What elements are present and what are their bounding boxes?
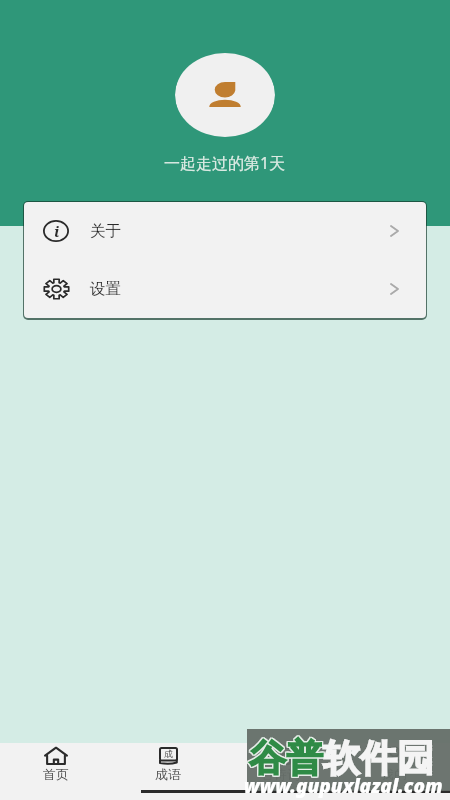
button[interactable]: 成 bbox=[112, 743, 224, 800]
staticText: 谷普 bbox=[249, 736, 323, 783]
button[interactable]: 古诗词 bbox=[224, 743, 337, 800]
staticText: 谷普 bbox=[248, 735, 322, 782]
staticText: 谷普 bbox=[250, 736, 324, 783]
staticText: 设置 bbox=[90, 279, 121, 299]
staticText: 谷普 bbox=[249, 735, 323, 782]
staticText: 谷普 bbox=[250, 734, 324, 781]
staticText: 谷普 bbox=[248, 734, 322, 781]
button[interactable]: 我的 bbox=[337, 743, 450, 800]
staticText: 谷普 bbox=[250, 735, 324, 782]
staticText: 成 bbox=[164, 748, 173, 759]
button[interactable]: 首页 bbox=[0, 743, 112, 800]
button[interactable]: Profile avatar bbox=[175, 53, 275, 137]
staticText: 一起走过的第1天 bbox=[164, 152, 286, 174]
button[interactable]: 设置 bbox=[24, 260, 426, 318]
staticText: 软件园 bbox=[323, 735, 434, 782]
staticText: 成语 bbox=[155, 766, 181, 782]
staticText: 谷普 bbox=[248, 736, 322, 783]
staticText: 首页 bbox=[43, 766, 69, 782]
staticText: 我的 bbox=[381, 766, 407, 782]
button[interactable]: i bbox=[24, 202, 426, 260]
staticText: 关于 bbox=[90, 221, 121, 241]
staticText: 谷普 bbox=[249, 734, 323, 781]
staticText: 古诗词 bbox=[261, 766, 300, 782]
staticText: www.gupuxlazal.com bbox=[244, 773, 443, 799]
staticText: i bbox=[54, 221, 60, 241]
